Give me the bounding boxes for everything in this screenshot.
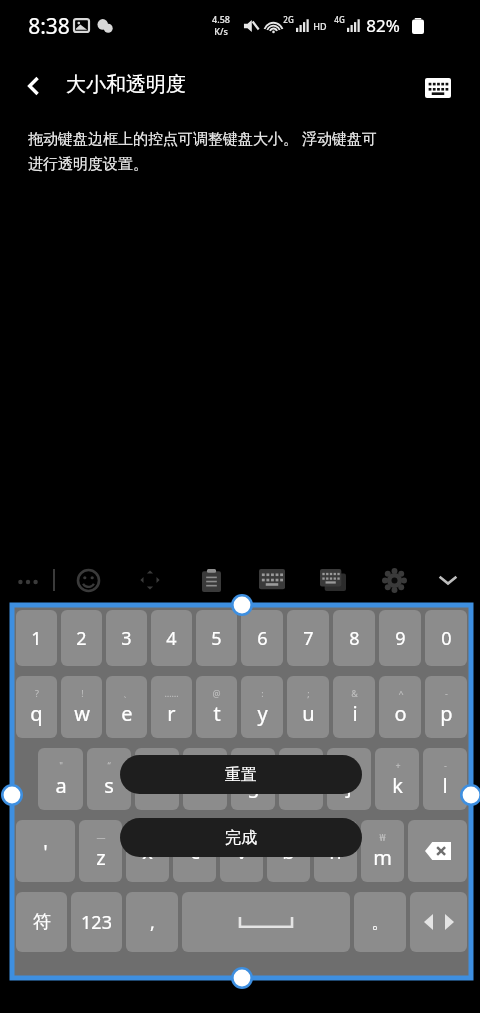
button[interactable]: Resize handle <box>231 967 253 989</box>
button[interactable]: Hide keyboard <box>428 560 468 600</box>
button[interactable]: 6 <box>241 610 283 666</box>
button[interactable]: ? <box>16 676 57 738</box>
button[interactable]: Resize handle <box>231 594 253 616</box>
staticText: 拖动键盘边框上的控点可调整键盘大小。 浮动键盘可 <box>28 128 377 148</box>
staticText: 1 <box>31 626 42 651</box>
button[interactable]: - <box>425 676 467 738</box>
staticText: & <box>351 687 358 699</box>
button[interactable]: ( <box>135 748 179 810</box>
staticText: w <box>74 700 90 727</box>
button[interactable]: Move keyboard <box>130 560 170 600</box>
button[interactable]: @ <box>196 676 237 738</box>
button[interactable]: , <box>126 892 178 952</box>
staticText: 5 <box>211 626 222 651</box>
staticText: x <box>142 838 153 865</box>
staticText: l <box>442 772 448 799</box>
button[interactable]: 2 <box>61 610 102 666</box>
staticText: t <box>213 700 221 727</box>
staticText: : <box>261 687 264 699</box>
button[interactable]: 9 <box>379 610 421 666</box>
button[interactable] <box>182 892 350 952</box>
button[interactable]: ) <box>183 748 227 810</box>
button[interactable]: v <box>220 820 263 882</box>
button[interactable]: b <box>267 820 310 882</box>
staticText: 2 <box>76 626 87 651</box>
staticText: 8 <box>349 626 360 651</box>
button[interactable]: Resize handle <box>460 784 480 806</box>
staticText: 4.58 <box>212 13 230 25</box>
button[interactable]: Clipboard <box>191 560 231 600</box>
button[interactable]: 符 <box>16 892 67 952</box>
staticText: g <box>247 772 260 799</box>
staticText: K/s <box>214 25 228 37</box>
button[interactable]: 0 <box>425 610 467 666</box>
staticText: , <box>150 910 155 935</box>
staticText: b <box>282 838 295 865</box>
button[interactable]: + <box>375 748 419 810</box>
button[interactable]: Keyboard <box>418 68 458 108</box>
staticText: 、 <box>123 688 132 699</box>
button[interactable]: 5 <box>196 610 237 666</box>
button[interactable]: Split keyboard <box>313 560 353 600</box>
staticText: ! <box>81 687 84 699</box>
staticText: 9 <box>395 626 406 651</box>
button[interactable]: ! <box>61 676 102 738</box>
button[interactable]: Emoji <box>68 560 108 600</box>
button[interactable]: ' <box>16 820 75 882</box>
staticText: 大小和透明度 <box>66 72 186 97</box>
button[interactable]: & <box>333 676 375 738</box>
button[interactable]: = <box>231 748 275 810</box>
button[interactable]: : <box>241 676 283 738</box>
button[interactable]: n <box>314 820 357 882</box>
staticText: u <box>302 700 315 727</box>
staticText: = <box>251 759 257 771</box>
button[interactable]: - <box>423 748 467 810</box>
button[interactable]: ₩ <box>361 820 404 882</box>
staticText: i <box>352 700 358 727</box>
staticText: — <box>96 831 106 843</box>
staticText: " <box>59 759 63 771</box>
button[interactable]: Back <box>12 64 56 108</box>
button[interactable]: 。 <box>354 892 406 952</box>
button[interactable]: — <box>79 820 122 882</box>
button[interactable]: ~ <box>327 748 371 810</box>
button[interactable]: 3 <box>106 610 147 666</box>
button[interactable] <box>408 820 467 882</box>
staticText: 。 <box>371 911 389 934</box>
button[interactable]: c <box>173 820 216 882</box>
button[interactable]: Resize handle <box>1 784 23 806</box>
staticText: 3 <box>121 626 132 651</box>
button[interactable]: " <box>38 748 83 810</box>
button[interactable]: 1 <box>16 610 57 666</box>
staticText: f <box>202 772 209 799</box>
button[interactable]: 重置 <box>120 755 362 794</box>
button[interactable]: ; <box>287 676 329 738</box>
staticText: - <box>444 759 447 771</box>
button[interactable]: “ <box>87 748 131 810</box>
staticText: 6 <box>257 626 268 651</box>
staticText: 重置 <box>225 765 257 785</box>
staticText: 7 <box>303 626 314 651</box>
button[interactable]: Settings <box>374 560 414 600</box>
button[interactable]: x <box>126 820 169 882</box>
button[interactable]: 8 <box>333 610 375 666</box>
staticText: q <box>30 700 43 727</box>
button[interactable] <box>410 892 467 952</box>
button[interactable]: 7 <box>287 610 329 666</box>
staticText: 82% <box>366 14 400 37</box>
staticText: h <box>295 772 308 799</box>
staticText: o <box>394 700 407 727</box>
button[interactable]: 4 <box>151 610 192 666</box>
button[interactable]: ^ <box>379 676 421 738</box>
staticText: e <box>121 700 133 727</box>
button[interactable]: 、 <box>106 676 147 738</box>
button[interactable]: …… <box>151 676 192 738</box>
button[interactable]: / <box>279 748 323 810</box>
button[interactable]: 完成 <box>120 818 362 857</box>
button[interactable]: 123 <box>71 892 122 952</box>
button[interactable]: More <box>8 562 48 602</box>
button[interactable]: Keyboard layout <box>252 560 292 600</box>
